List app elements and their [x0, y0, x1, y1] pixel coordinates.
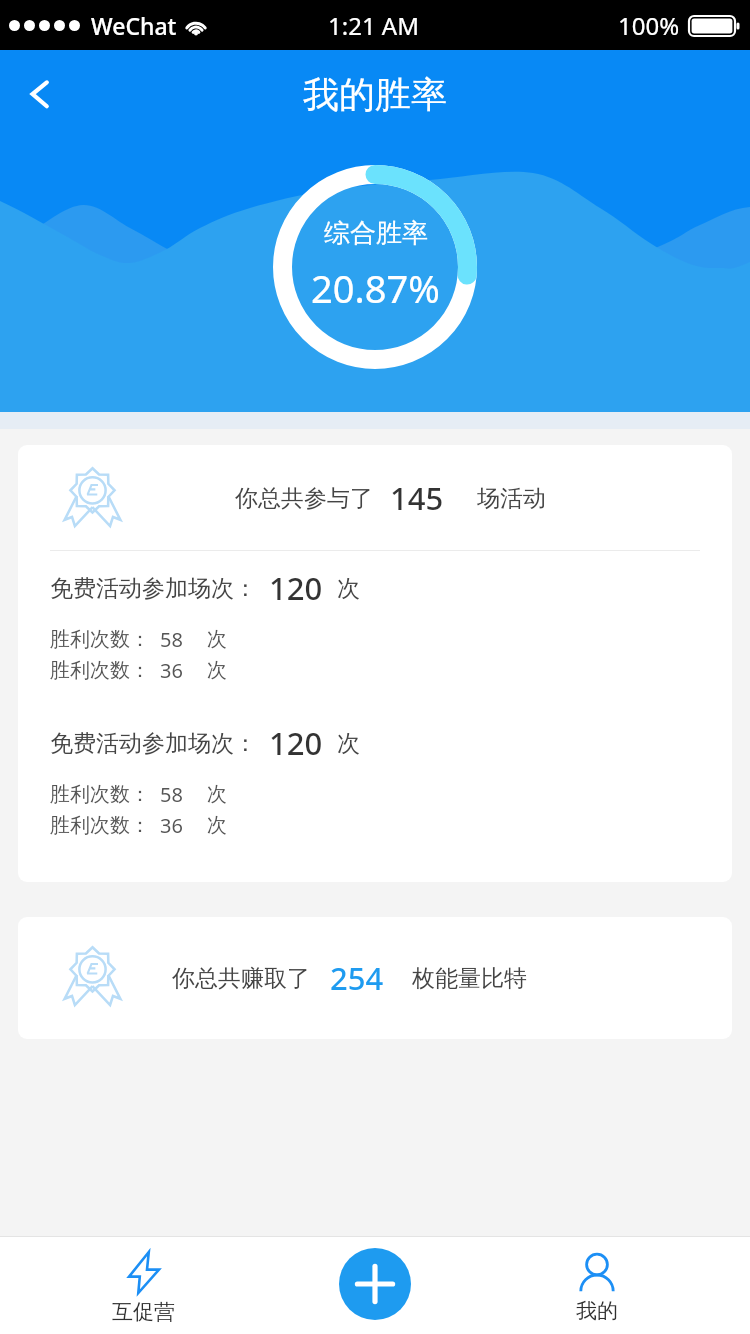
staticText: 36: [160, 657, 183, 684]
staticText: 次: [337, 574, 360, 603]
staticText: 次: [207, 627, 227, 652]
staticText: WeChat: [91, 10, 177, 41]
staticText: 免费活动参加场次：: [50, 729, 257, 758]
staticText: 145: [390, 477, 444, 519]
staticText: 58: [160, 781, 183, 808]
button[interactable]: Add: [339, 1248, 411, 1320]
staticText: 我的胜率: [303, 72, 447, 117]
staticText: 58: [160, 626, 183, 653]
staticText: 1:21 AM: [328, 9, 419, 42]
staticText: 20.87%: [311, 262, 440, 314]
button[interactable]: 我的: [527, 1236, 667, 1334]
staticText: 120: [269, 567, 323, 609]
staticText: 120: [269, 722, 323, 764]
staticText: 场活动: [477, 484, 546, 513]
button[interactable]: 互促营: [73, 1236, 213, 1334]
staticText: 综合胜率: [324, 217, 428, 250]
staticText: 254: [330, 957, 384, 999]
staticText: 胜利次数：: [50, 658, 150, 683]
staticText: 互促营: [112, 1299, 175, 1325]
staticText: 我的: [576, 1298, 618, 1324]
staticText: 次: [337, 729, 360, 758]
staticText: 胜利次数：: [50, 782, 150, 807]
staticText: 次: [207, 782, 227, 807]
staticText: 免费活动参加场次：: [50, 574, 257, 603]
staticText: 枚能量比特: [412, 964, 527, 993]
button[interactable]: Back: [12, 66, 68, 122]
staticText: 次: [207, 813, 227, 838]
staticText: 100%: [618, 9, 680, 42]
staticText: 胜利次数：: [50, 813, 150, 838]
staticText: 胜利次数：: [50, 627, 150, 652]
staticText: 次: [207, 658, 227, 683]
staticText: 你总共赚取了: [172, 964, 310, 993]
staticText: 你总共参与了: [235, 484, 373, 513]
staticText: 36: [160, 812, 183, 839]
